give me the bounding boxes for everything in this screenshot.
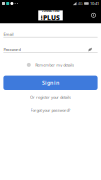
staticText: CONNECTING xyxy=(41,9,59,13)
staticText: Or register your details xyxy=(30,94,71,100)
button[interactable]: Forgot your password? xyxy=(3,107,98,113)
button[interactable]: Or register your details xyxy=(3,94,98,100)
staticText: Forgot your password? xyxy=(30,107,70,113)
button[interactable]: Remember my details xyxy=(27,62,74,68)
staticText: PLUS xyxy=(43,13,60,22)
button[interactable]: Help xyxy=(91,13,96,17)
staticText: Password xyxy=(3,47,20,52)
button[interactable]: Sign in xyxy=(3,76,98,90)
staticText: Remember my details xyxy=(35,62,74,67)
staticText: Sign in xyxy=(42,79,59,86)
staticText: 4G xyxy=(78,1,83,6)
button[interactable]: Show password xyxy=(88,48,92,51)
staticText: 10:41 xyxy=(90,1,99,6)
staticText: Email xyxy=(3,32,13,37)
